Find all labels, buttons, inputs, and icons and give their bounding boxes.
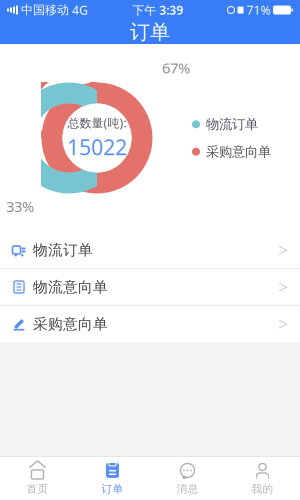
staticText: > — [278, 238, 288, 261]
staticText: 总数量(吨): — [67, 115, 126, 131]
button[interactable]: 消息 — [150, 457, 225, 500]
button[interactable]: 首页 — [0, 457, 75, 500]
staticText: 中国移动 — [21, 3, 69, 17]
staticText: 首页 — [26, 482, 48, 495]
staticText: 订单 — [130, 20, 170, 44]
staticText: 我的 — [251, 482, 273, 495]
button[interactable]: 订单 — [75, 457, 150, 500]
staticText: > — [278, 312, 288, 335]
staticText: 71% — [246, 2, 270, 18]
staticText: > — [278, 275, 288, 298]
staticText: 物流订单 — [206, 116, 258, 132]
button[interactable]: 物流订单 — [0, 232, 300, 268]
staticText: 67% — [162, 58, 190, 77]
staticText: 4G — [72, 2, 88, 18]
staticText: 15022 — [67, 133, 127, 161]
staticText: 物流意向单 — [33, 278, 108, 296]
button[interactable]: 物流意向单 — [0, 269, 300, 305]
button[interactable]: 我的 — [225, 457, 300, 500]
staticText: 下午 3:39 — [132, 2, 183, 18]
staticText: 采购意向单 — [33, 315, 108, 333]
button[interactable]: 采购意向单 — [0, 306, 300, 342]
staticText: 采购意向单 — [206, 143, 271, 160]
staticText: 订单 — [101, 482, 123, 495]
staticText: 33% — [6, 196, 34, 216]
staticText: 消息 — [176, 482, 198, 495]
staticText: 物流订单 — [33, 241, 93, 259]
